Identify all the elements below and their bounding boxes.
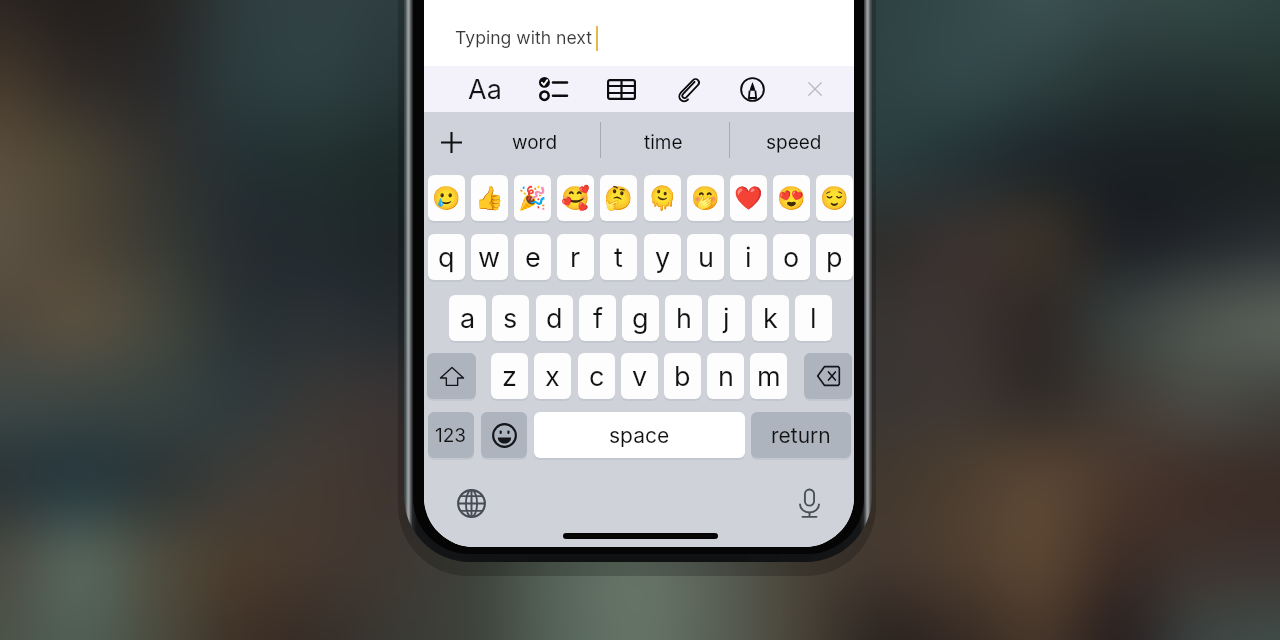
button[interactable]: t	[600, 234, 637, 280]
button[interactable]: Checklist	[530, 66, 575, 112]
staticText: 🤭	[691, 185, 720, 212]
button[interactable]: m	[750, 353, 787, 399]
staticText: z	[502, 360, 517, 393]
staticText: t	[614, 241, 623, 274]
staticText: n	[718, 360, 734, 393]
staticText: r	[570, 241, 581, 274]
button[interactable]: Backspace	[804, 353, 852, 399]
button[interactable]: Emoji keyboard	[481, 412, 527, 458]
button[interactable]: word	[489, 114, 581, 170]
button[interactable]: Table	[599, 66, 644, 112]
staticText: 🥲	[432, 185, 461, 212]
button[interactable]: return	[751, 412, 851, 458]
staticText: 123	[435, 424, 467, 447]
button[interactable]: e	[514, 234, 551, 280]
button[interactable]: Emoji	[514, 175, 551, 221]
staticText: word	[512, 131, 558, 154]
staticText: g	[632, 302, 649, 335]
button[interactable]: y	[644, 234, 681, 280]
staticText: f	[593, 302, 603, 335]
staticText: q	[438, 241, 455, 274]
button[interactable]: q	[428, 234, 465, 280]
staticText: a	[460, 302, 476, 335]
button[interactable]: h	[665, 295, 702, 341]
staticText: c	[589, 360, 605, 393]
button[interactable]: r	[557, 234, 594, 280]
button[interactable]: u	[687, 234, 724, 280]
staticText: 🥰	[561, 185, 590, 212]
button[interactable]: n	[707, 353, 744, 399]
staticText: e	[525, 241, 541, 274]
staticText: b	[674, 360, 691, 393]
staticText: 🤔	[604, 185, 633, 212]
staticText: p	[826, 241, 843, 274]
button[interactable]: i	[730, 234, 767, 280]
staticText: i	[745, 241, 752, 274]
button[interactable]: Emoji	[816, 175, 853, 221]
button[interactable]: z	[491, 353, 528, 399]
button[interactable]: c	[578, 353, 615, 399]
button[interactable]: Close	[792, 66, 837, 112]
button[interactable]: Emoji	[471, 175, 508, 221]
button[interactable]: x	[534, 353, 571, 399]
button[interactable]: Emoji	[773, 175, 810, 221]
button[interactable]: Emoji	[687, 175, 724, 221]
button[interactable]: f	[579, 295, 616, 341]
staticText: time	[644, 131, 683, 154]
staticText: Aa	[468, 73, 502, 106]
button[interactable]: v	[621, 353, 658, 399]
button[interactable]: 123	[428, 412, 474, 458]
staticText: h	[676, 302, 692, 335]
button[interactable]: Emoji	[600, 175, 637, 221]
button[interactable]: b	[664, 353, 701, 399]
staticText: j	[723, 302, 730, 335]
button[interactable]: s	[492, 295, 529, 341]
staticText: 🫠	[648, 185, 677, 212]
button[interactable]: Emoji	[428, 175, 465, 221]
button[interactable]: Aa	[462, 66, 507, 112]
button[interactable]: a	[449, 295, 486, 341]
staticText: speed	[766, 131, 822, 154]
button[interactable]: Markup	[730, 66, 775, 112]
button[interactable]: Emoji	[730, 175, 767, 221]
button[interactable]: Switch keyboard	[449, 481, 493, 525]
staticText: s	[503, 302, 518, 335]
button[interactable]: Emoji	[557, 175, 594, 221]
button[interactable]: k	[752, 295, 789, 341]
button[interactable]: space	[534, 412, 745, 458]
staticText: ❤️	[734, 185, 763, 212]
staticText: 👍	[475, 185, 504, 212]
staticText: w	[478, 241, 501, 274]
button[interactable]: Emoji	[644, 175, 681, 221]
staticText: m	[757, 360, 781, 393]
button[interactable]: j	[708, 295, 745, 341]
staticText: u	[698, 241, 714, 274]
staticText: 😍	[777, 185, 806, 212]
button[interactable]: g	[622, 295, 659, 341]
button[interactable]: l	[795, 295, 832, 341]
button[interactable]: o	[773, 234, 810, 280]
staticText: l	[810, 302, 817, 335]
button[interactable]: time	[618, 114, 709, 170]
staticText: space	[609, 423, 670, 448]
staticText: 😌	[820, 185, 849, 212]
staticText: o	[783, 241, 800, 274]
button[interactable]: Add	[429, 114, 473, 170]
staticText: 🎉	[518, 185, 547, 212]
button[interactable]: Shift	[427, 353, 476, 399]
staticText: x	[545, 360, 560, 393]
staticText: v	[632, 360, 648, 393]
button[interactable]: d	[536, 295, 573, 341]
button[interactable]: Dictate	[787, 481, 831, 525]
button[interactable]: Attach	[665, 66, 710, 112]
button[interactable]: w	[471, 234, 508, 280]
staticText: Typing with next	[455, 27, 593, 48]
staticText: y	[655, 241, 671, 274]
staticText: return	[771, 423, 831, 448]
button[interactable]: speed	[748, 114, 839, 170]
button[interactable]: p	[816, 234, 853, 280]
staticText: d	[546, 302, 563, 335]
staticText: k	[763, 302, 778, 335]
